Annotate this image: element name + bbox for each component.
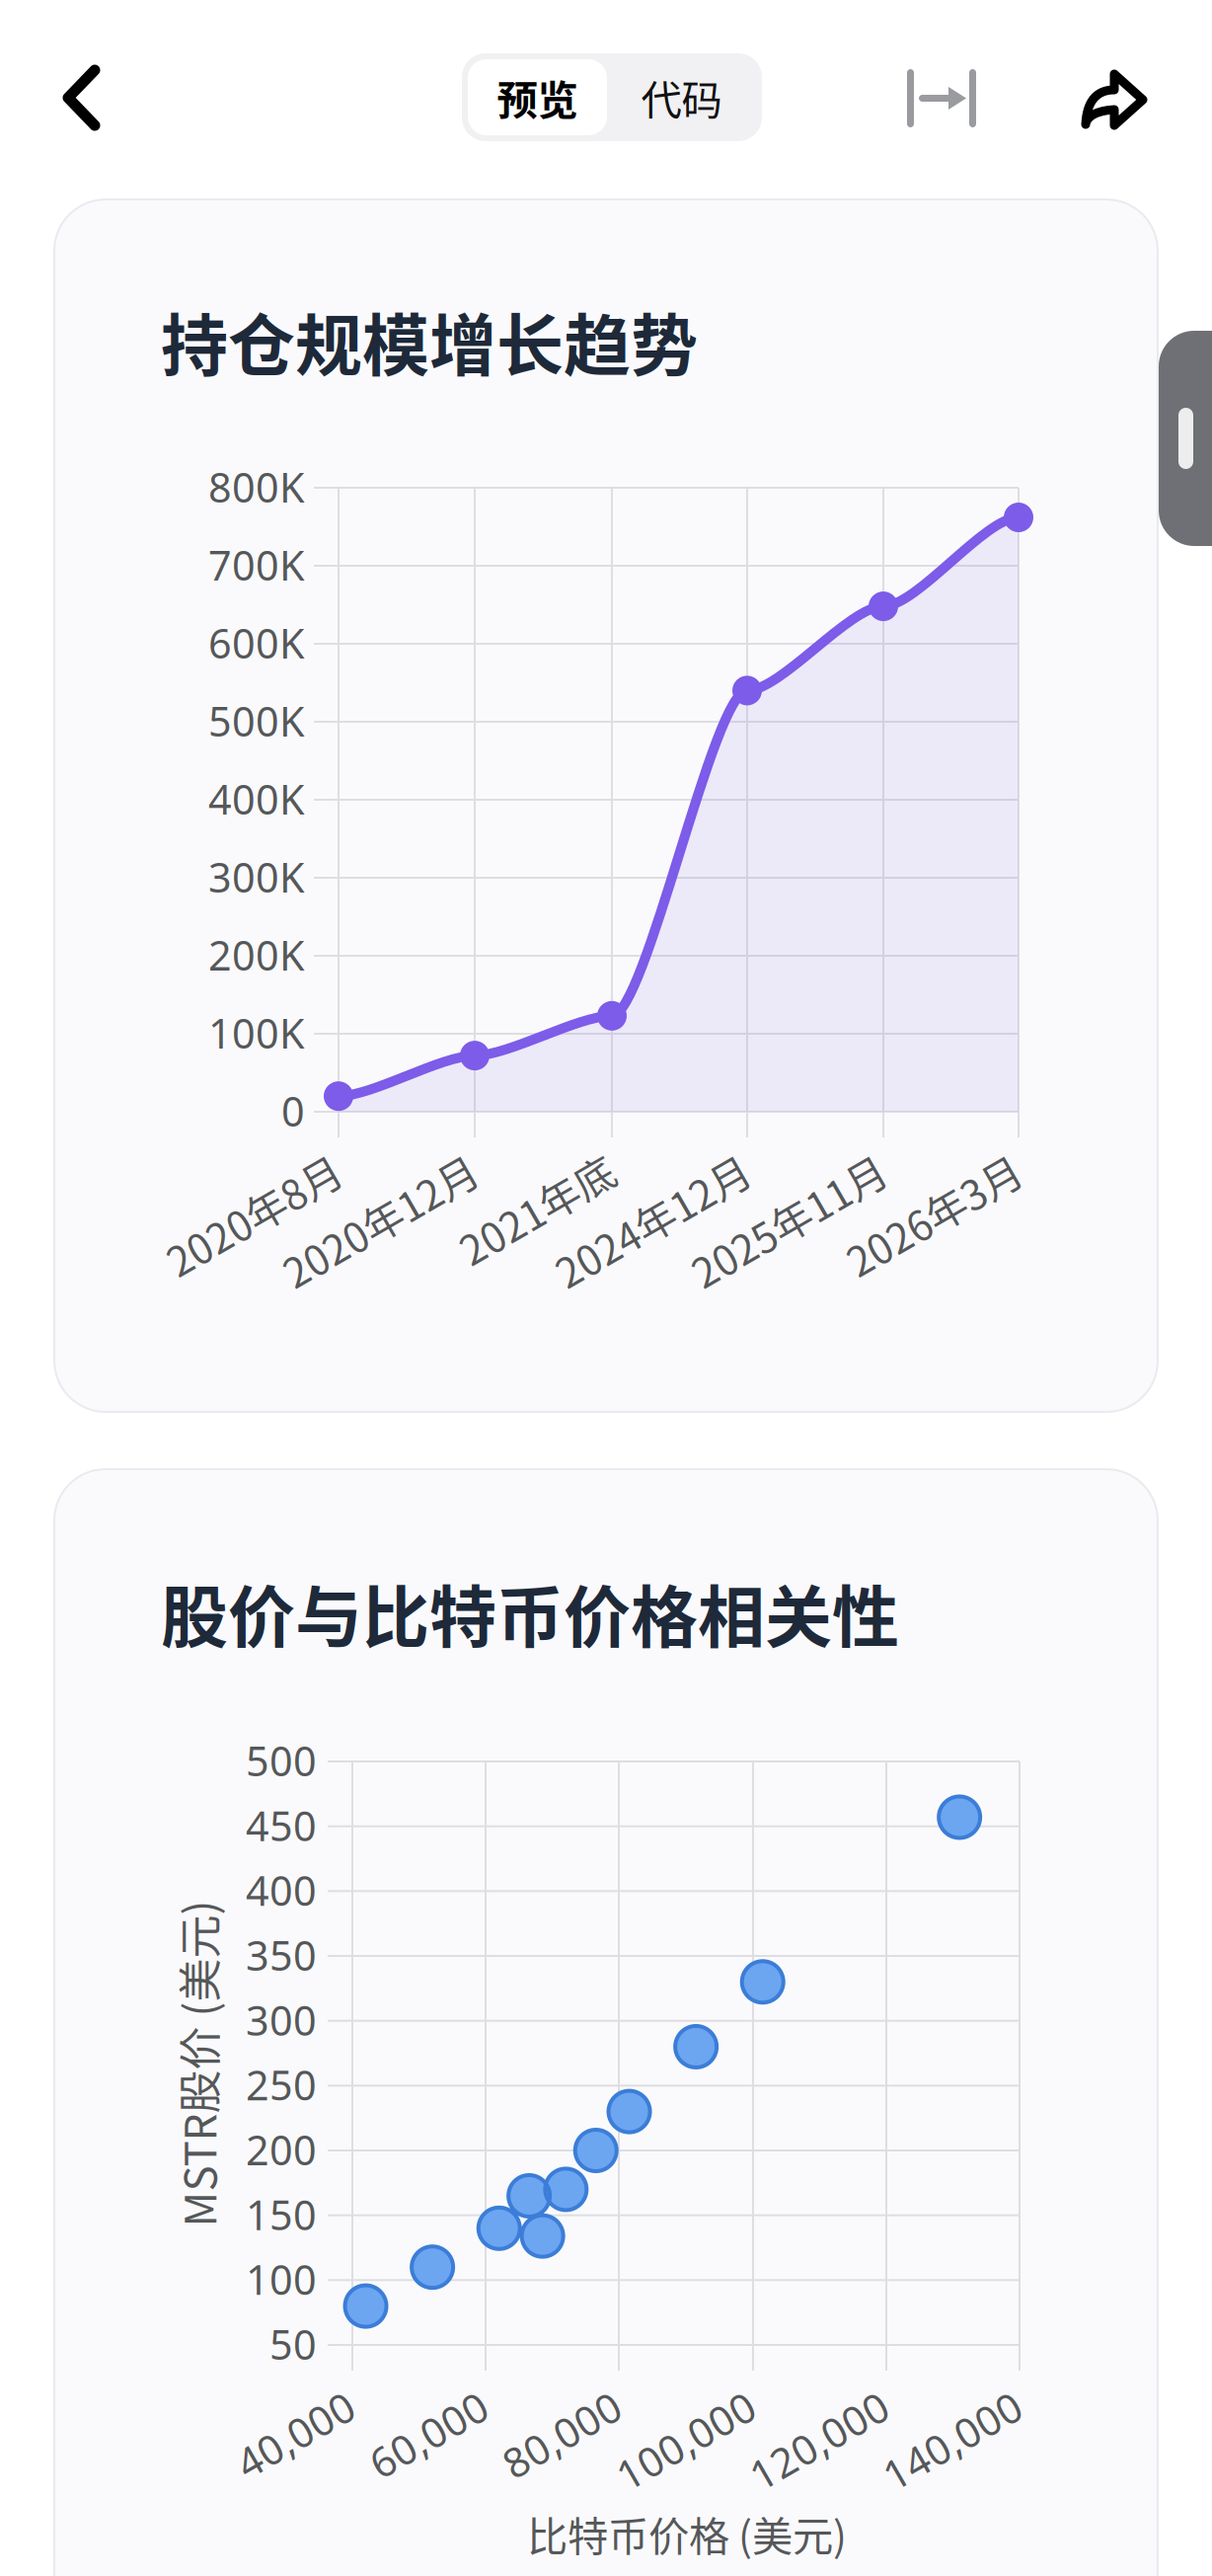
staticText: 代码	[641, 68, 722, 127]
staticText: 60,000	[343, 2378, 473, 2432]
staticText: 800K	[208, 460, 305, 514]
staticText: 持仓规模增长趋势	[161, 292, 698, 390]
staticText: 350	[246, 1928, 317, 1982]
staticText: 2020年12月	[245, 1140, 462, 1199]
staticText: 600K	[208, 616, 305, 670]
button[interactable]: 预览	[468, 59, 607, 135]
button[interactable]: 代码	[607, 59, 756, 135]
staticText: 预览	[497, 68, 578, 127]
button[interactable]: Back	[34, 43, 132, 152]
staticText: 2021年底	[427, 1140, 599, 1199]
staticText: 400K	[208, 772, 305, 826]
staticText: MSTR股价 (美元)	[34, 2032, 361, 2095]
staticText: 0	[281, 1084, 305, 1138]
staticText: 2025年11月	[653, 1140, 871, 1199]
staticText: 200K	[208, 928, 305, 982]
staticText: 100K	[208, 1006, 305, 1060]
staticText: 300K	[208, 850, 305, 904]
staticText: 比特币价格 (美元)	[527, 2504, 847, 2563]
staticText: 150	[246, 2187, 317, 2241]
staticText: 450	[246, 1798, 317, 1852]
staticText: 100,000	[587, 2378, 740, 2432]
staticText: 100	[246, 2252, 317, 2306]
staticText: 400	[246, 1863, 317, 1917]
staticText: 500	[246, 1733, 317, 1788]
staticText: 2026年3月	[811, 1140, 1006, 1199]
staticText: 700K	[208, 538, 305, 592]
staticText: 40,000	[210, 2378, 340, 2432]
staticText: 2024年12月	[517, 1140, 734, 1199]
staticText: 200	[246, 2122, 317, 2177]
staticText: 120,000	[720, 2378, 873, 2432]
staticText: 140,000	[854, 2378, 1007, 2432]
staticText: 股价与比特币价格相关性	[161, 1564, 899, 1661]
staticText: 80,000	[477, 2378, 606, 2432]
button[interactable]: Share	[1065, 43, 1174, 152]
staticText: 2020年8月	[131, 1140, 326, 1199]
staticText: 300	[246, 1993, 317, 2047]
staticText: 50	[269, 2317, 317, 2371]
staticText: 500K	[208, 694, 305, 748]
staticText: 250	[246, 2058, 317, 2112]
button[interactable]: Fit width	[887, 43, 996, 152]
